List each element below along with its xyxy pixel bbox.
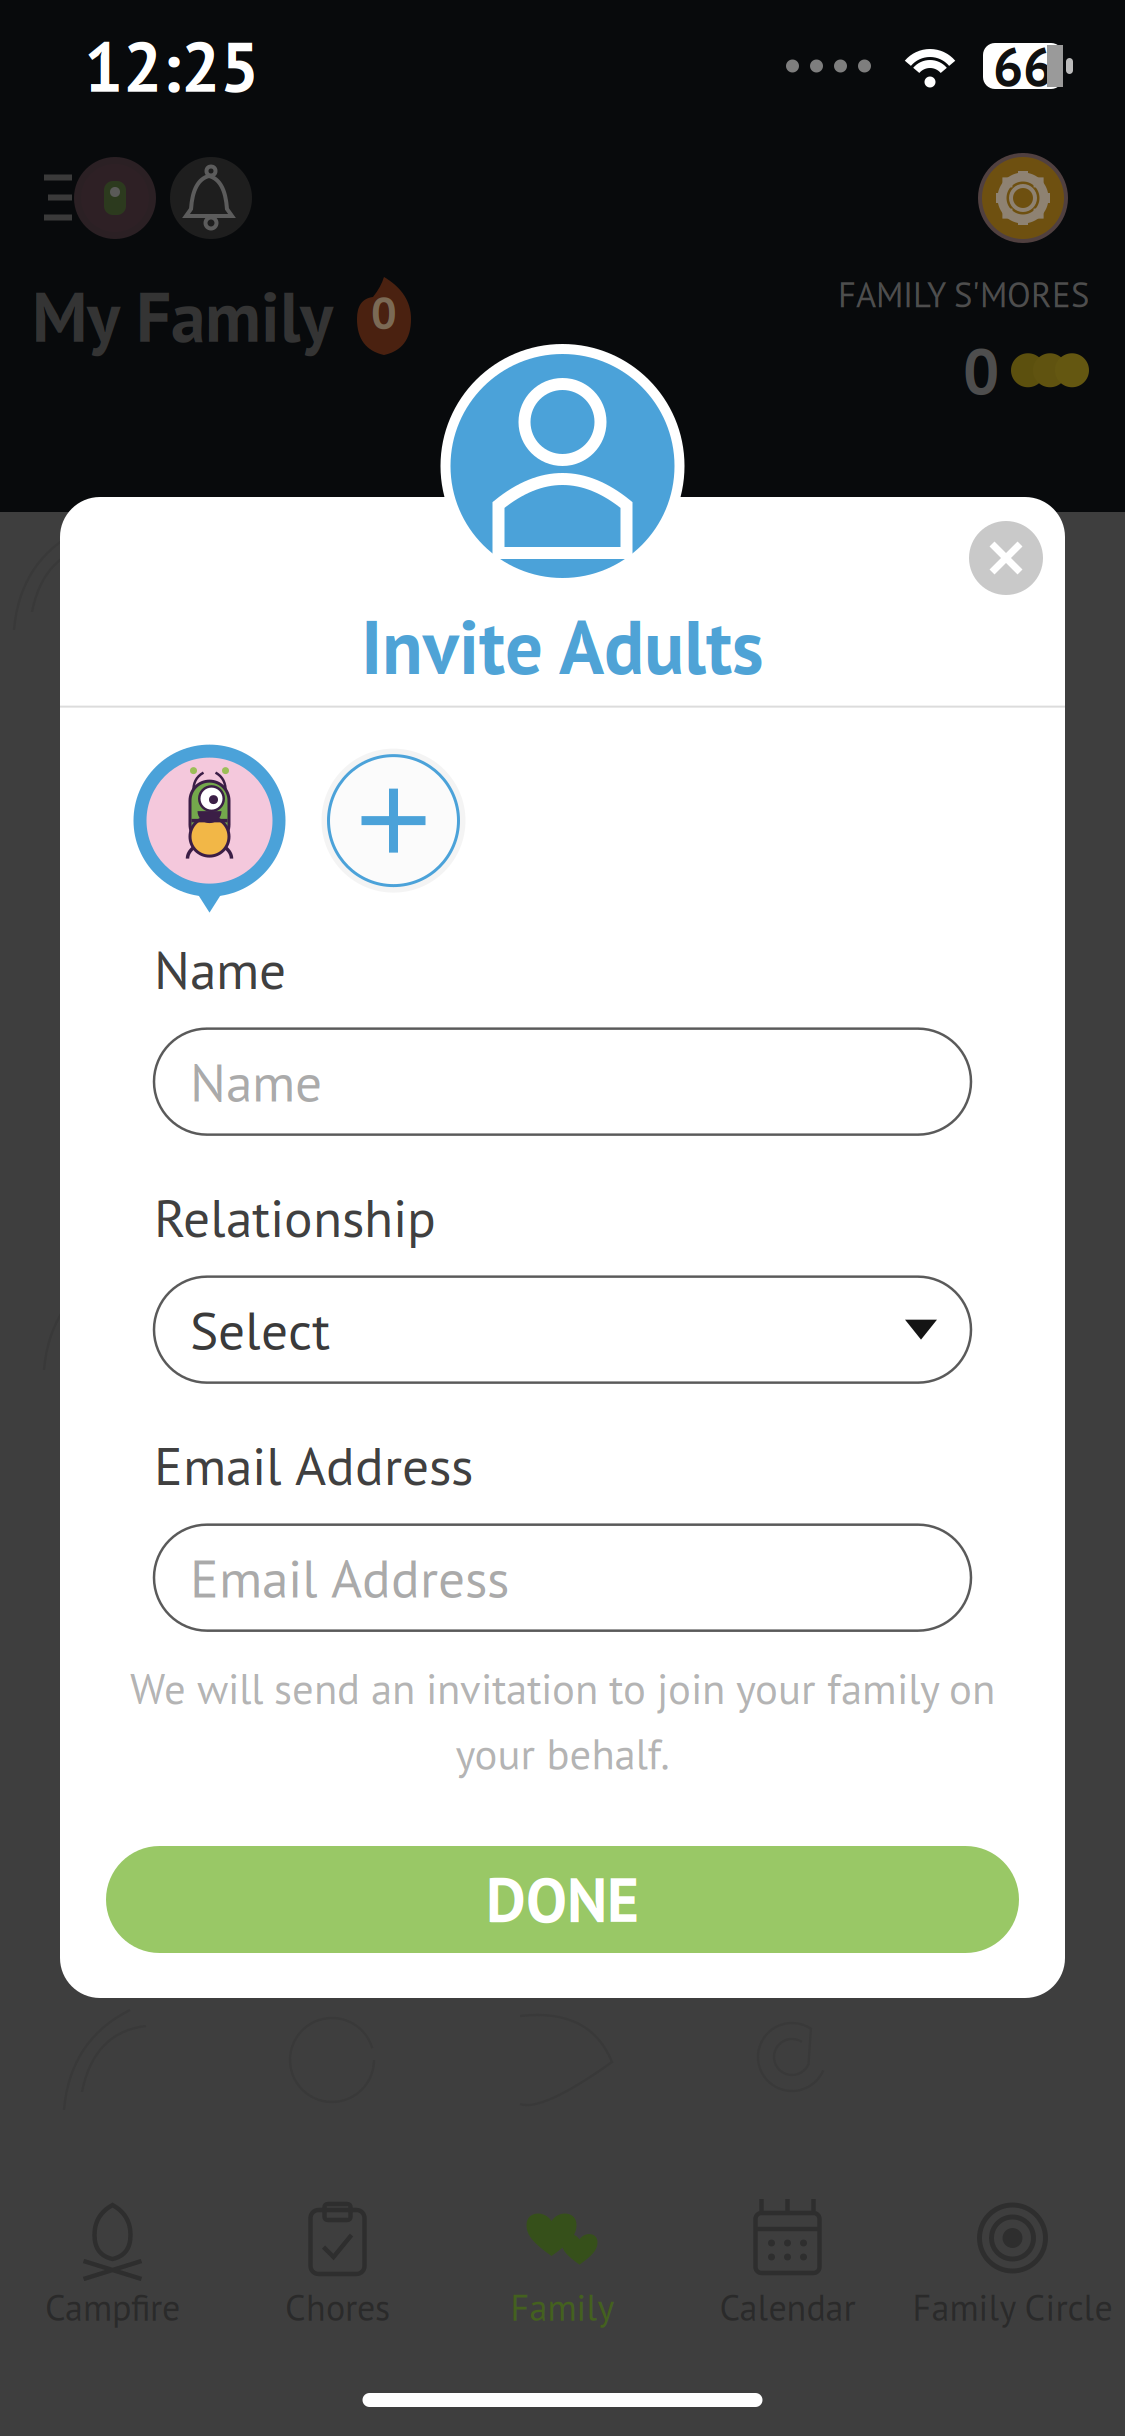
button[interactable]: Menu [44,155,156,241]
button[interactable]: Family [450,2204,675,2364]
button[interactable]: Add avatar [317,745,469,897]
staticText: Chores [285,2284,390,2331]
staticText: 0 [963,329,999,412]
staticText: DONE [486,1860,639,1939]
staticText: Invite Adults [361,598,764,695]
button[interactable]: Chores [225,2204,450,2364]
button[interactable]: Selected avatar [133,745,285,913]
staticText: Select [190,1295,330,1364]
staticText: Calendar [719,2284,855,2331]
staticText: Name [190,1047,322,1116]
staticText: Relationship [154,1183,436,1252]
staticText: 0 [371,283,397,341]
staticText: We will send an invitation to join your … [130,1661,995,1716]
staticText: 12:25 [84,21,259,111]
staticText: your behalf. [455,1726,669,1781]
staticText: Email Address [154,1431,473,1500]
staticText: FAMILY S'MORES [838,272,1089,317]
staticText: Email Address [190,1543,509,1612]
staticText: Campfire [45,2284,180,2331]
button[interactable]: Email Address [154,1525,971,1631]
button[interactable]: Close [969,521,1043,595]
button[interactable]: Family Circle [900,2204,1125,2364]
staticText: Family Circle [912,2284,1112,2331]
button[interactable]: Settings [978,153,1068,243]
staticText: 66 [993,31,1053,100]
button[interactable]: Calendar [675,2204,900,2364]
button[interactable]: Select [154,1277,971,1383]
button[interactable]: Notifications [170,155,252,241]
staticText: Name [154,935,286,1004]
button[interactable]: Name [154,1029,971,1135]
staticText: My Family [32,271,333,361]
staticText: Family [510,2284,614,2331]
button[interactable]: Campfire [0,2204,225,2364]
button[interactable]: DONE [106,1846,1019,1953]
